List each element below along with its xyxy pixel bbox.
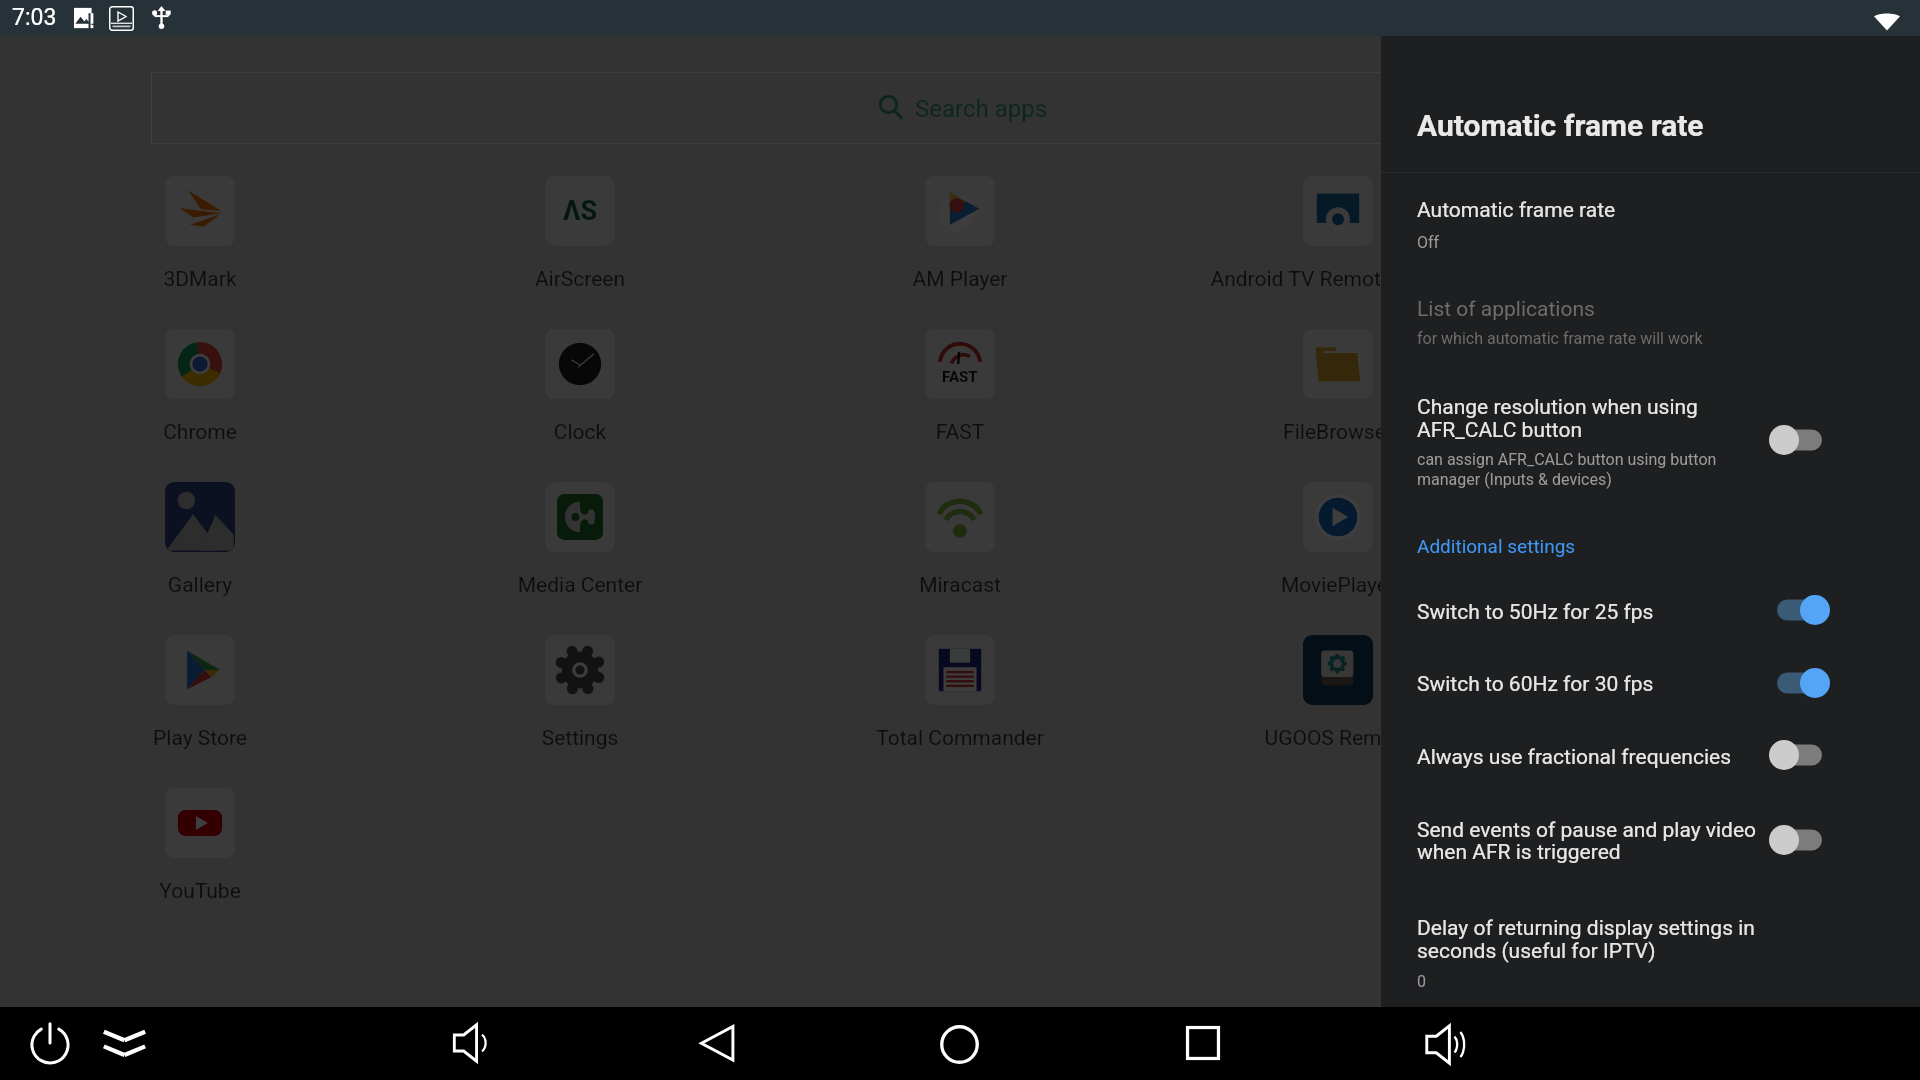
button[interactable]: Recent apps [1186, 1026, 1220, 1060]
staticText: Gallery [40, 573, 360, 598]
button[interactable]: Settings [420, 629, 740, 744]
button[interactable]: Play Store [40, 629, 360, 744]
staticText: Search apps [915, 95, 1048, 123]
button[interactable]: Media Center [420, 476, 740, 591]
button[interactable]: Android TV Remote Service [1178, 170, 1498, 285]
button[interactable]: Chrome [40, 323, 360, 438]
staticText: can assign AFR_CALC button using button [1417, 450, 1717, 469]
staticText: Media Center [420, 573, 740, 598]
staticText: Off [1417, 233, 1440, 252]
staticText: Miracast [800, 573, 1120, 598]
button[interactable]: YouTube [40, 782, 360, 897]
staticText: when AFR is triggered [1417, 840, 1621, 865]
staticText: Clock [420, 420, 740, 445]
staticText: seconds (useful for IPTV) [1417, 939, 1656, 964]
button[interactable]: Volume up [1426, 1025, 1465, 1064]
button[interactable]: Switch to 50Hz for 25 fps [1381, 570, 1920, 645]
button[interactable]: Delay of returning display settings in [1381, 872, 1920, 1000]
staticText: Switch to 50Hz for 25 fps [1417, 600, 1654, 625]
button[interactable]: Total Commander [800, 629, 1120, 744]
staticText: Delay of returning display settings in [1417, 916, 1755, 941]
staticText: Additional settings [1417, 535, 1576, 557]
staticText: FAST [942, 368, 978, 386]
button[interactable]: Always use fractional frequencies [1381, 718, 1920, 790]
button[interactable]: Send events of pause and play video [1381, 790, 1920, 872]
button[interactable]: MoviePlayer [1178, 476, 1498, 591]
staticText: Switch to 60Hz for 30 fps [1417, 672, 1654, 697]
staticText: 3DMark [40, 267, 360, 292]
staticText: MoviePlayer [1178, 573, 1498, 598]
staticText: FAST [800, 420, 1120, 445]
button[interactable]: Gallery [40, 476, 360, 591]
staticText: 7:03 [12, 4, 57, 31]
button[interactable]: Automatic frame rate [1381, 152, 1920, 252]
staticText: AirScreen [420, 267, 740, 292]
button[interactable]: List of applications [1381, 252, 1920, 352]
staticText: manager (Inputs & devices) [1417, 470, 1612, 489]
button[interactable]: Switch to 60Hz for 30 fps [1381, 645, 1920, 718]
staticText: Automatic frame rate [1417, 198, 1616, 223]
staticText: UGOOS Remote [1178, 726, 1498, 751]
staticText: Always use fractional frequencies [1417, 745, 1731, 770]
button[interactable]: AM Player [800, 170, 1120, 285]
button[interactable]: Additional settings [1381, 500, 1920, 562]
staticText: FileBrowser [1178, 420, 1498, 445]
staticText: YouTube [40, 879, 360, 904]
staticText: AM Player [800, 267, 1120, 292]
staticText: ΛS [563, 195, 598, 227]
staticText: AFR_CALC button [1417, 418, 1583, 443]
button[interactable]: Search apps [151, 72, 1791, 144]
staticText: Change resolution when using [1417, 395, 1698, 420]
button[interactable]: Volume down [453, 1024, 491, 1062]
staticText: Settings [420, 726, 740, 751]
button[interactable]: Home [940, 1025, 979, 1064]
button[interactable]: UGOOS Remote [1178, 629, 1498, 744]
button[interactable]: Notifications [103, 1024, 146, 1067]
staticText: Android TV Remote Service [1178, 267, 1498, 292]
staticText: Automatic frame rate [1417, 108, 1704, 143]
staticText: 0 [1417, 972, 1426, 991]
button[interactable]: Power [29, 1022, 71, 1064]
staticText: for which automatic frame rate will work [1417, 329, 1703, 348]
staticText: List of applications [1417, 297, 1595, 322]
button[interactable]: Clock [420, 323, 740, 438]
button[interactable]: Miracast [800, 476, 1120, 591]
staticText: Total Commander [800, 726, 1120, 751]
button[interactable]: ΛS [420, 170, 740, 285]
button[interactable]: 3DMark [40, 170, 360, 285]
button[interactable]: Change resolution when using [1381, 352, 1920, 500]
button[interactable]: Back [700, 1025, 735, 1060]
button[interactable]: FAST [800, 323, 1120, 438]
staticText: Chrome [40, 420, 360, 445]
button[interactable]: FileBrowser [1178, 323, 1498, 438]
staticText: Play Store [40, 726, 360, 751]
staticText: Send events of pause and play video [1417, 818, 1757, 843]
